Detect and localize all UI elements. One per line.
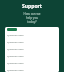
staticText: Question item bbox=[7, 54, 24, 57]
staticText: Support bbox=[22, 3, 42, 10]
button[interactable]: Question item bbox=[5, 38, 59, 45]
button[interactable]: Question item bbox=[5, 59, 59, 66]
staticText: Question item bbox=[7, 33, 24, 36]
staticText: Question item bbox=[7, 68, 24, 71]
staticText: Question item bbox=[7, 61, 24, 64]
button[interactable]: Question item bbox=[5, 45, 59, 52]
staticText: How can we help you today? bbox=[21, 12, 43, 24]
button[interactable]: Question item bbox=[5, 66, 59, 72]
staticText: Question item bbox=[7, 40, 24, 43]
staticText: Question item bbox=[7, 47, 24, 50]
button[interactable]: Question item bbox=[5, 52, 59, 59]
button[interactable]: Question item bbox=[5, 31, 59, 38]
